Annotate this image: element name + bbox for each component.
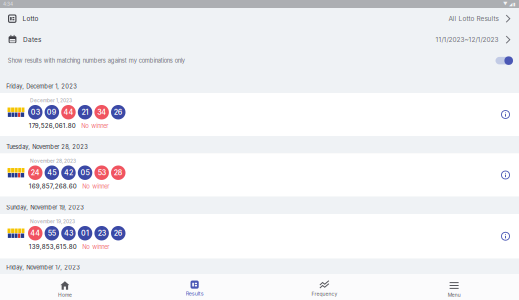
staticText: Friday, November 17, 2023 bbox=[6, 264, 80, 271]
staticText: 09 bbox=[47, 108, 57, 116]
staticText: 4:34 bbox=[3, 1, 13, 7]
staticText: 24 bbox=[31, 168, 40, 177]
staticText: Dates bbox=[23, 36, 41, 43]
staticText: Show results with matching numbers again… bbox=[8, 57, 185, 64]
button[interactable]: Menu bbox=[389, 274, 519, 300]
staticText: Menu bbox=[448, 292, 461, 298]
staticText: 03 bbox=[31, 108, 40, 116]
button[interactable]: Frequency bbox=[259, 274, 389, 300]
button[interactable]: Matching numbers only bbox=[494, 55, 519, 67]
staticText: 21 bbox=[82, 108, 89, 116]
staticText: No winner bbox=[82, 243, 109, 250]
staticText: 28 bbox=[114, 168, 123, 177]
staticText: 05 bbox=[81, 168, 90, 177]
button[interactable]: Results bbox=[130, 274, 260, 300]
staticText: 53 bbox=[98, 168, 106, 177]
button[interactable]: November 19, 2023 bbox=[0, 214, 519, 258]
staticText: Frequency bbox=[311, 291, 337, 297]
staticText: November 28, 2023 bbox=[30, 158, 76, 164]
staticText: 44 bbox=[30, 229, 40, 237]
staticText: 26 bbox=[114, 108, 123, 116]
button[interactable]: Lotto bbox=[0, 8, 519, 29]
button[interactable]: December 1, 2023 bbox=[0, 93, 519, 136]
staticText: 11/1/2023~12/1/2023 bbox=[435, 36, 498, 43]
staticText: 45 bbox=[47, 168, 56, 177]
staticText: 44 bbox=[63, 108, 73, 116]
button[interactable]: November 28, 2023 bbox=[0, 153, 519, 196]
staticText: Lotto bbox=[22, 15, 38, 22]
staticText: No winner bbox=[81, 122, 108, 129]
staticText: 34 bbox=[97, 108, 106, 116]
staticText: 26 bbox=[114, 229, 123, 237]
staticText: Tuesday, November 28, 2023 bbox=[6, 143, 88, 150]
staticText: All Lotto Results bbox=[448, 15, 498, 22]
staticText: Home bbox=[58, 292, 72, 298]
staticText: 55 bbox=[48, 229, 56, 237]
staticText: ▼ ◢ ▮ bbox=[503, 1, 515, 7]
staticText: 23 bbox=[98, 229, 106, 237]
staticText: 169,857,268.60 bbox=[29, 183, 77, 190]
staticText: November 19, 2023 bbox=[30, 218, 75, 224]
staticText: Results bbox=[186, 290, 204, 297]
staticText: Friday, December 1, 2023 bbox=[6, 83, 77, 90]
staticText: December 1, 2023 bbox=[30, 97, 72, 103]
staticText: 42 bbox=[64, 168, 73, 177]
staticText: 139,853,615.80 bbox=[29, 243, 77, 251]
staticText: 01 bbox=[81, 229, 89, 237]
staticText: Sunday, November 19, 2023 bbox=[6, 204, 84, 211]
button[interactable]: Dates bbox=[0, 29, 519, 50]
staticText: No winner bbox=[82, 183, 109, 190]
button[interactable]: Home bbox=[0, 274, 130, 300]
staticText: 179,526,061.80 bbox=[29, 122, 76, 130]
staticText: 43 bbox=[64, 229, 73, 237]
